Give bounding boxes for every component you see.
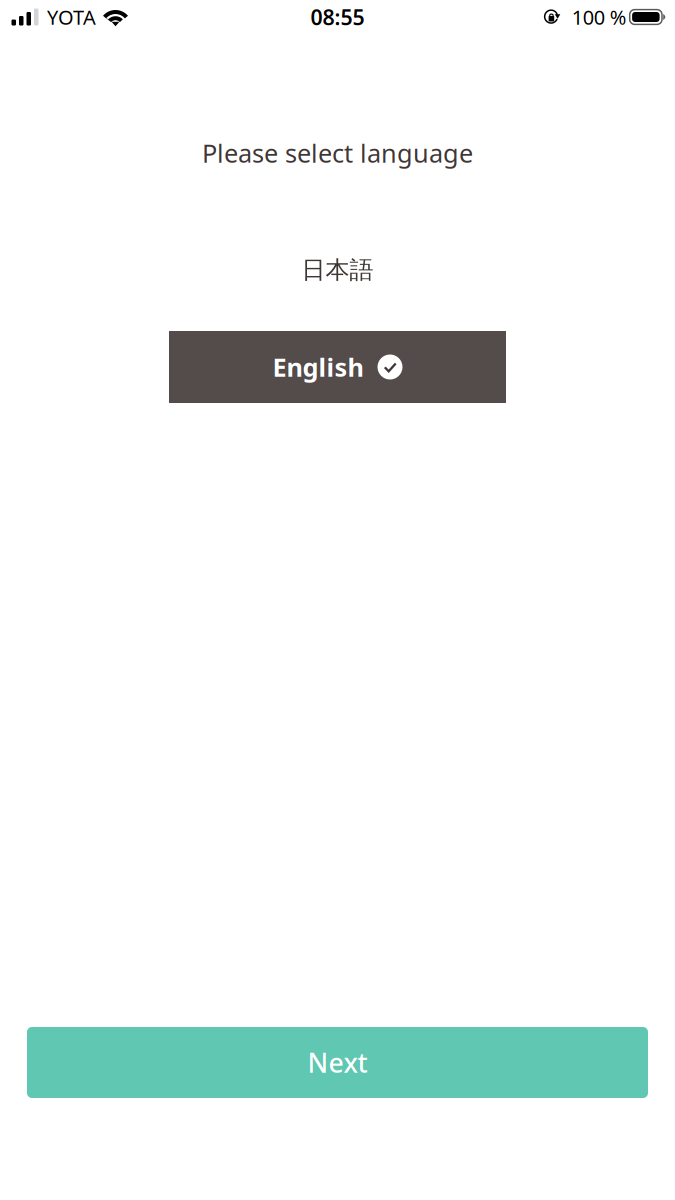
button[interactable]: 日本語 (169, 234, 506, 306)
staticText: YOTA (47, 4, 96, 30)
staticText: 日本語 (301, 255, 373, 285)
staticText: 100 % (572, 4, 627, 30)
staticText: English (272, 350, 363, 384)
staticText: Please select language (202, 136, 473, 170)
staticText: 08:55 (310, 3, 364, 31)
button[interactable]: English (169, 331, 506, 403)
staticText: Next (307, 1045, 367, 1080)
button[interactable]: Next (27, 1027, 648, 1098)
